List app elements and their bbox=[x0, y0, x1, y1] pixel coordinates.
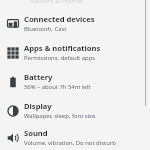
button[interactable]: Sound bbox=[0, 125, 150, 150]
other: Display bbox=[7, 105, 19, 117]
button[interactable]: Battery bbox=[0, 67, 150, 96]
staticText: Battery bbox=[24, 72, 53, 82]
staticText: Display bbox=[24, 101, 52, 111]
button[interactable]: Display bbox=[0, 96, 150, 125]
staticText: Connected devices bbox=[24, 14, 95, 24]
button[interactable]: Apps and notifications bbox=[0, 38, 150, 67]
button[interactable]: Connected devices bbox=[0, 9, 150, 38]
staticText: Permissions, default apps bbox=[24, 54, 96, 62]
staticText: Volume, vibration, Do not disturb bbox=[24, 139, 116, 147]
staticText: Wallpaper, sleep, font size bbox=[24, 112, 96, 120]
staticText: Apps & notifications bbox=[24, 43, 101, 53]
staticText: Network & internet bbox=[30, 0, 84, 5]
other: Apps and notifications bbox=[7, 47, 19, 59]
other: Sound bbox=[7, 132, 19, 144]
staticText: 56% – about 7h 54m left bbox=[24, 83, 91, 91]
other: Connected devices bbox=[7, 18, 19, 30]
staticText: Sound bbox=[24, 128, 48, 138]
staticText: Bluetooth, Cast bbox=[24, 25, 67, 33]
other: Battery bbox=[7, 76, 19, 88]
